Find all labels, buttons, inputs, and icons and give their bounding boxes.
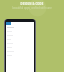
staticText: DESIGN & CODE [0, 2, 64, 6]
button[interactable] [5, 19, 35, 72]
staticText: beautiful apps, crafted with care [0, 6, 64, 10]
